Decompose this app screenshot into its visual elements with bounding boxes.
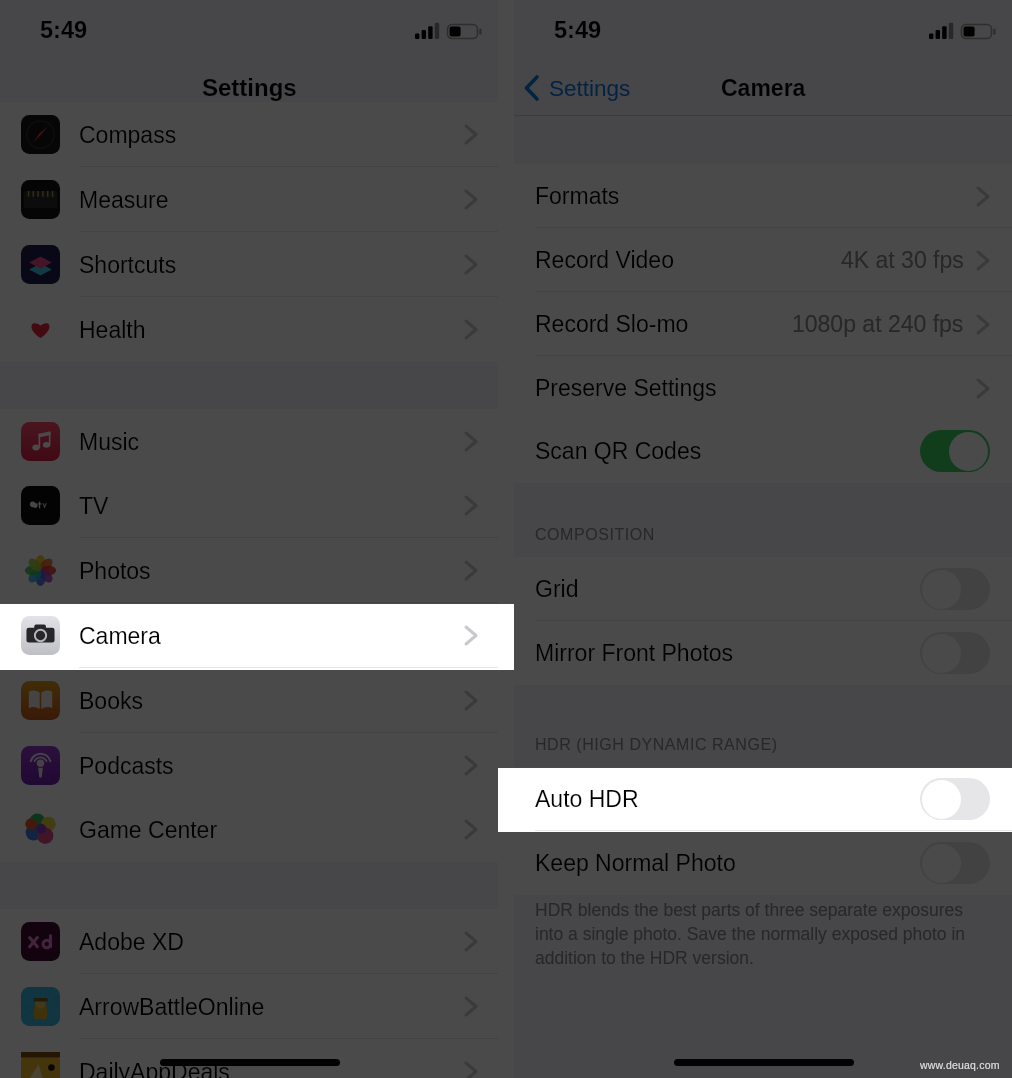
staticText: Adobe XD — [79, 929, 184, 955]
staticText: Camera — [721, 75, 806, 101]
staticText: TV — [79, 493, 109, 519]
button[interactable]: Compass — [0, 102, 498, 167]
button[interactable]: Measure — [0, 167, 498, 232]
button[interactable]: Game Center — [0, 797, 498, 862]
staticText: Health — [79, 317, 146, 343]
button[interactable]: Books — [0, 668, 498, 733]
button[interactable]: Back to Settings — [520, 71, 635, 105]
staticText: DailyAppDeals — [79, 1059, 230, 1078]
button[interactable]: Formats — [514, 164, 1012, 228]
button[interactable]: DailyAppDeals — [0, 1039, 498, 1078]
staticText: 5:49 — [554, 17, 602, 43]
button[interactable]: Mirror Front Photos — [514, 621, 1012, 685]
staticText: Preserve Settings — [535, 375, 717, 401]
staticText: Game Center — [79, 817, 218, 843]
staticText: Auto HDR — [535, 786, 639, 812]
button[interactable]: Adobe XD — [0, 909, 498, 974]
button[interactable]: Photos — [0, 538, 498, 603]
staticText: 1080p at 240 fps — [792, 311, 964, 337]
button[interactable]: Auto HDR — [514, 767, 1012, 831]
button[interactable]: Keep Normal Photo — [514, 831, 1012, 895]
staticText: Keep Normal Photo — [535, 850, 736, 876]
staticText: Compass — [79, 122, 177, 148]
staticText: Formats — [535, 183, 620, 209]
staticText: Record Video — [535, 247, 674, 273]
button[interactable]: Camera — [0, 603, 498, 668]
staticText: Music — [79, 429, 140, 455]
staticText: Photos — [79, 558, 151, 584]
staticText: ArrowBattleOnline — [79, 994, 265, 1020]
button[interactable]: Preserve Settings — [514, 356, 1012, 420]
staticText: COMPOSITION — [535, 526, 655, 544]
button[interactable]: TV — [0, 473, 498, 538]
button[interactable]: ArrowBattleOnline — [0, 974, 498, 1039]
staticText: Measure — [79, 187, 169, 213]
staticText: Mirror Front Photos — [535, 640, 734, 666]
staticText: Camera — [79, 623, 161, 649]
staticText: Books — [79, 688, 143, 714]
button[interactable]: Record Video — [514, 228, 1012, 292]
staticText: Settings — [549, 76, 631, 101]
staticText: Scan QR Codes — [535, 438, 702, 464]
button[interactable]: Podcasts — [0, 733, 498, 798]
staticText: Shortcuts — [79, 252, 177, 278]
button[interactable]: Grid — [514, 557, 1012, 621]
button[interactable]: Scan QR Codes — [514, 419, 1012, 483]
button[interactable]: Record Slo-mo — [514, 292, 1012, 356]
staticText: Record Slo-mo — [535, 311, 689, 337]
staticText: Settings — [202, 74, 297, 101]
button[interactable]: Shortcuts — [0, 232, 498, 297]
staticText: 4K at 30 fps — [841, 247, 964, 273]
button[interactable]: Health — [0, 297, 498, 362]
staticText: www.deuaq.com — [920, 1059, 1000, 1071]
button[interactable]: Music — [0, 409, 498, 474]
staticText: HDR (HIGH DYNAMIC RANGE) — [535, 736, 778, 754]
staticText: Grid — [535, 576, 579, 602]
staticText: HDR blends the best parts of three separ… — [535, 900, 990, 968]
staticText: 5:49 — [40, 17, 88, 43]
staticText: Podcasts — [79, 753, 174, 779]
